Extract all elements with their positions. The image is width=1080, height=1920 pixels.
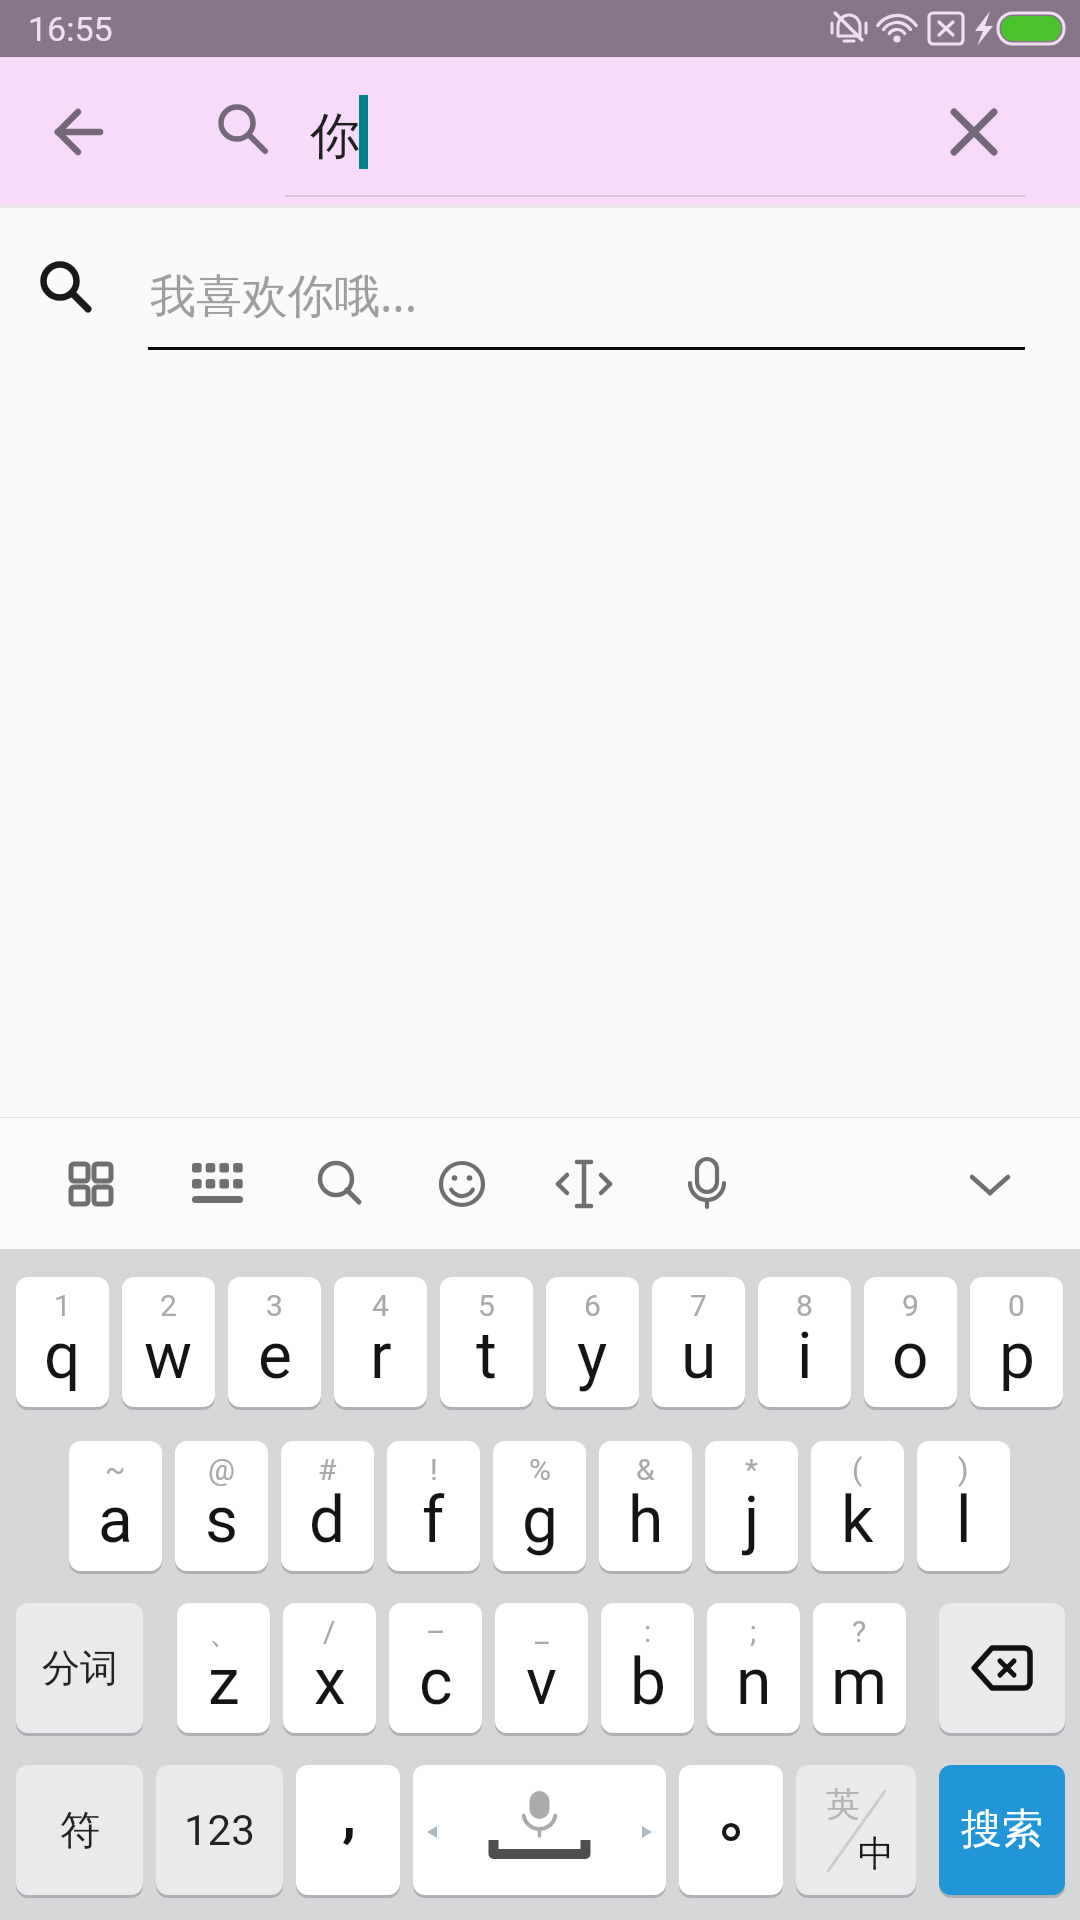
button[interactable]: 、 xyxy=(177,1603,270,1733)
staticText: ; xyxy=(750,1614,757,1649)
button[interactable] xyxy=(285,77,1025,197)
button[interactable] xyxy=(183,1149,253,1219)
button[interactable]: 搜索 xyxy=(939,1765,1065,1895)
staticText: % xyxy=(529,1452,551,1487)
staticText: 1 xyxy=(54,1288,71,1323)
button[interactable]: ( xyxy=(811,1441,904,1571)
staticText: 你 xyxy=(310,105,360,168)
button[interactable]: 1 xyxy=(16,1277,109,1407)
staticText: v xyxy=(526,1645,557,1720)
button[interactable] xyxy=(305,1149,375,1219)
staticText: u xyxy=(681,1319,717,1394)
button[interactable]: / xyxy=(283,1603,376,1733)
button[interactable]: & xyxy=(599,1441,692,1571)
staticText: 6 xyxy=(584,1288,601,1323)
button[interactable]: 123 xyxy=(156,1765,283,1895)
staticText: k xyxy=(841,1483,874,1558)
staticText: c xyxy=(419,1645,453,1720)
staticText: z xyxy=(208,1645,240,1720)
staticText: p xyxy=(999,1319,1035,1394)
staticText: e xyxy=(258,1319,292,1394)
staticText: , xyxy=(342,1781,357,1849)
staticText: s xyxy=(205,1483,239,1558)
button[interactable]: 符 xyxy=(16,1765,143,1895)
button[interactable] xyxy=(955,1149,1025,1219)
button[interactable]: 英 xyxy=(796,1765,916,1895)
button[interactable]: * xyxy=(705,1441,798,1571)
staticText: ? xyxy=(852,1614,867,1649)
button[interactable]: 3 xyxy=(228,1277,321,1407)
button[interactable]: ! xyxy=(387,1441,480,1571)
button[interactable] xyxy=(427,1149,497,1219)
button[interactable]: 5 xyxy=(440,1277,533,1407)
staticText: b xyxy=(630,1645,666,1720)
button[interactable]: ) xyxy=(917,1441,1010,1571)
button[interactable]: _ xyxy=(495,1603,588,1733)
staticText: 7 xyxy=(690,1288,707,1323)
staticText: – xyxy=(426,1614,446,1649)
staticText: o xyxy=(892,1319,929,1394)
staticText: / xyxy=(323,1614,336,1649)
staticText: g xyxy=(522,1483,558,1558)
button[interactable]: 8 xyxy=(758,1277,851,1407)
staticText: ) xyxy=(958,1452,969,1487)
staticText: w xyxy=(144,1319,193,1394)
button[interactable]: 7 xyxy=(652,1277,745,1407)
button[interactable] xyxy=(672,1149,742,1219)
staticText: : xyxy=(644,1614,652,1649)
button[interactable] xyxy=(943,101,1005,163)
button[interactable] xyxy=(413,1765,666,1895)
staticText: 、 xyxy=(209,1614,239,1652)
button[interactable]: ? xyxy=(813,1603,906,1733)
staticText: ! xyxy=(430,1452,438,1487)
staticText: h xyxy=(628,1483,664,1558)
staticText: a xyxy=(98,1483,133,1558)
staticText: t xyxy=(476,1319,497,1394)
staticText: # xyxy=(318,1452,337,1487)
staticText: 0 xyxy=(1008,1288,1025,1323)
button[interactable]: # xyxy=(281,1441,374,1571)
button[interactable]: 0 xyxy=(970,1277,1063,1407)
staticText: n xyxy=(736,1645,772,1720)
button[interactable] xyxy=(549,1149,619,1219)
button[interactable]: ; xyxy=(707,1603,800,1733)
staticText: q xyxy=(44,1319,81,1394)
staticText: 9 xyxy=(902,1288,919,1323)
staticText: 2 xyxy=(160,1288,177,1323)
button[interactable] xyxy=(48,101,110,163)
button[interactable]: – xyxy=(389,1603,482,1733)
button[interactable]: @ xyxy=(175,1441,268,1571)
button[interactable] xyxy=(679,1765,783,1895)
staticText: @ xyxy=(208,1452,235,1487)
button[interactable] xyxy=(56,1149,126,1219)
button[interactable]: 4 xyxy=(334,1277,427,1407)
staticText: y xyxy=(577,1319,608,1394)
staticText: 分词 xyxy=(42,1644,118,1692)
staticText: 8 xyxy=(796,1288,813,1323)
staticText: 123 xyxy=(184,1806,255,1855)
button[interactable]: 我喜欢你哦... xyxy=(0,208,1080,360)
button[interactable]: : xyxy=(601,1603,694,1733)
staticText: 英 xyxy=(826,1783,860,1826)
staticText: d xyxy=(309,1483,346,1558)
button[interactable]: 分词 xyxy=(16,1603,143,1733)
staticText: & xyxy=(636,1452,655,1487)
button[interactable]: ~ xyxy=(69,1441,162,1571)
staticText: ~ xyxy=(105,1452,126,1487)
staticText: 3 xyxy=(266,1288,283,1323)
staticText: 我喜欢你哦... xyxy=(150,263,417,326)
staticText: 符 xyxy=(60,1805,100,1855)
staticText: i xyxy=(797,1319,813,1394)
button[interactable]: 6 xyxy=(546,1277,639,1407)
staticText: 4 xyxy=(372,1288,389,1323)
button[interactable]: 2 xyxy=(122,1277,215,1407)
staticText: r xyxy=(370,1319,392,1394)
staticText: _ xyxy=(535,1614,549,1649)
button[interactable]: % xyxy=(493,1441,586,1571)
button[interactable]: 9 xyxy=(864,1277,957,1407)
staticText: m xyxy=(831,1645,888,1720)
button[interactable]: , xyxy=(296,1765,400,1895)
button[interactable] xyxy=(939,1603,1065,1733)
staticText: l xyxy=(956,1483,972,1558)
staticText: x xyxy=(314,1645,346,1720)
